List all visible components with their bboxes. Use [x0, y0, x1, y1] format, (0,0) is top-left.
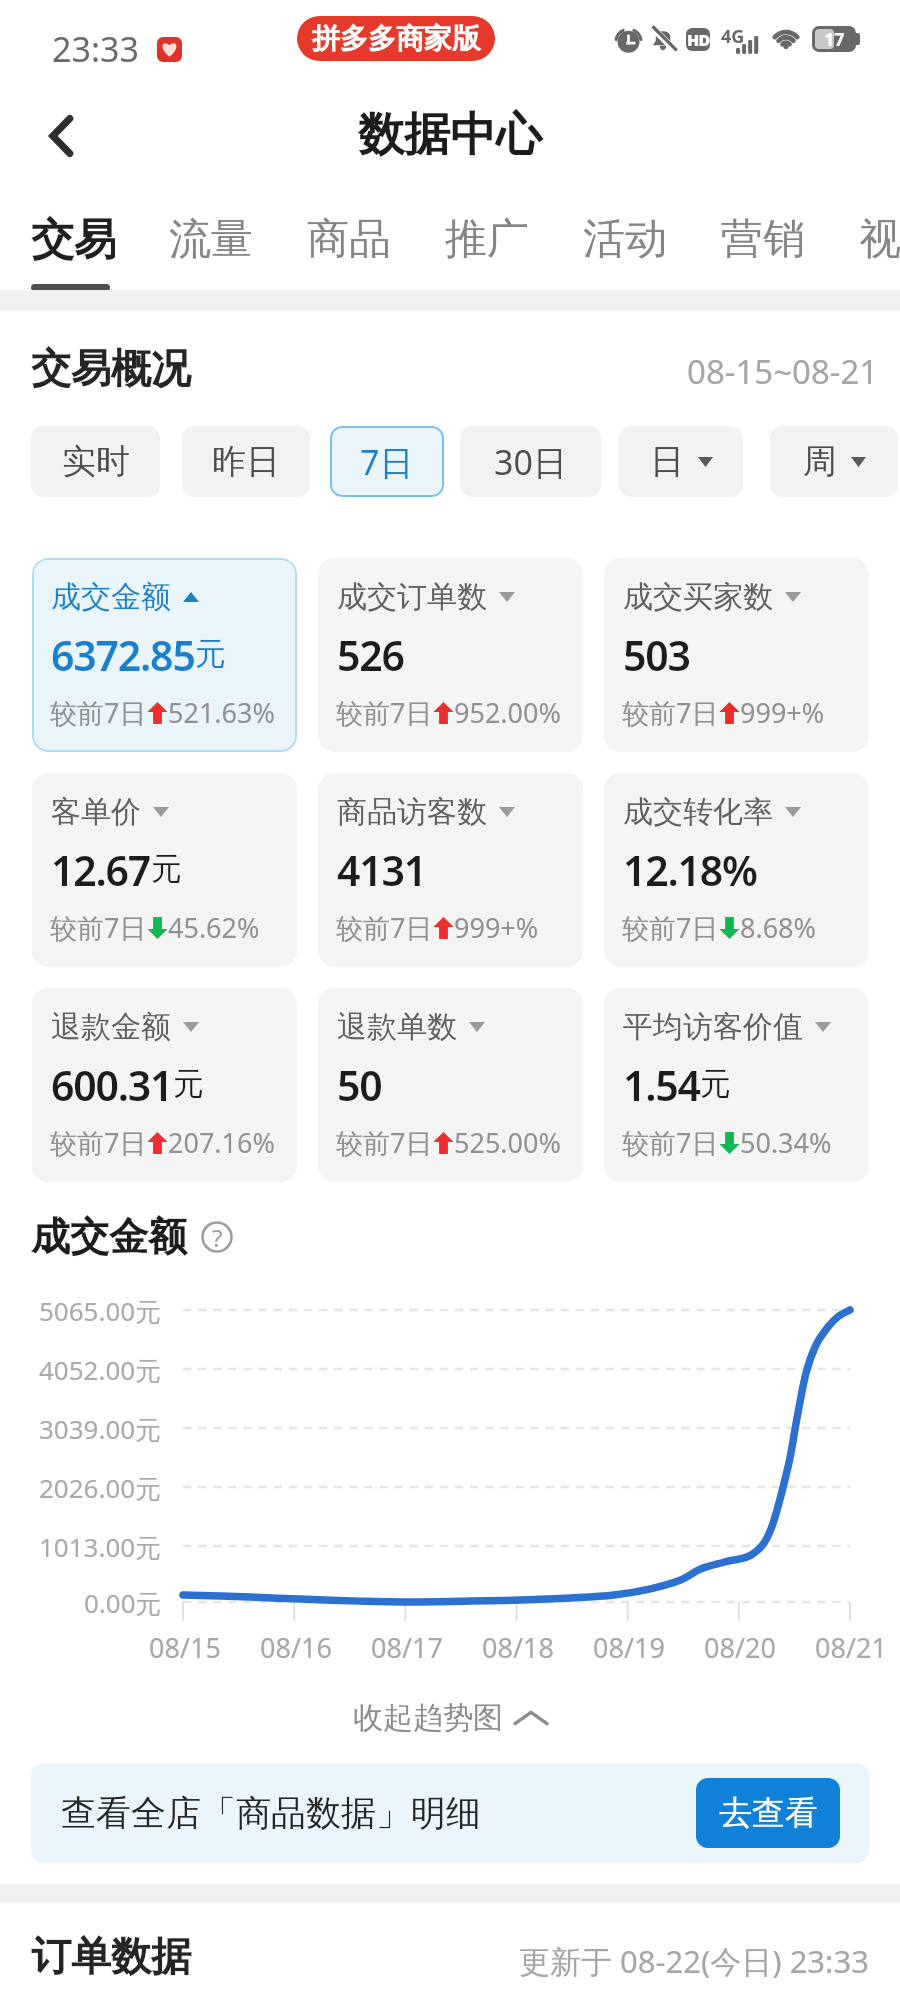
staticText: 数据中心 — [358, 106, 542, 164]
staticText: 元 — [173, 1064, 204, 1103]
button[interactable]: 客单价 — [32, 773, 297, 967]
staticText: 952.00% — [454, 694, 561, 731]
button[interactable]: 退款金额 — [32, 988, 297, 1182]
button[interactable]: 成交订单数 — [318, 558, 583, 752]
staticText: 元 — [195, 634, 226, 673]
staticText: 08-15~08-21 — [687, 349, 879, 394]
staticText: 营销 — [721, 213, 805, 266]
button[interactable]: 成交转化率 — [604, 773, 869, 967]
staticText: 较前7日 — [622, 909, 719, 946]
button[interactable]: 昨日 — [182, 426, 310, 497]
staticText: 较前7日 — [336, 1124, 433, 1161]
staticText: 503 — [623, 627, 690, 683]
staticText: HD — [687, 29, 710, 51]
button[interactable]: 商品访客数 — [318, 773, 583, 967]
staticText: ? — [212, 1221, 223, 1253]
staticText: 08/19 — [593, 1629, 665, 1666]
staticText: 08/15 — [149, 1629, 221, 1666]
staticText: 17 — [824, 27, 845, 52]
staticText: 较前7日 — [622, 694, 719, 731]
staticText: 600.31 — [51, 1057, 173, 1113]
staticText: 08/21 — [815, 1629, 887, 1666]
button[interactable]: 平均访客价值 — [604, 988, 869, 1182]
staticText: 成交金额 — [51, 578, 171, 616]
staticText: 1.54 — [623, 1057, 700, 1113]
staticText: 客单价 — [51, 793, 141, 831]
button[interactable]: Back — [22, 96, 102, 176]
staticText: 5065.00元 — [39, 1293, 162, 1329]
button[interactable]: 视频 — [859, 183, 900, 293]
staticText: 1013.00元 — [39, 1529, 162, 1565]
button[interactable]: 7日 — [330, 426, 444, 497]
staticText: 交易概况 — [31, 343, 191, 393]
staticText: 商品 — [307, 213, 391, 266]
staticText: 退款单数 — [337, 1008, 457, 1046]
staticText: 较前7日 — [622, 1124, 719, 1161]
staticText: 日 — [650, 440, 684, 483]
staticText: 999+% — [454, 909, 539, 946]
staticText: 活动 — [583, 213, 667, 266]
staticText: 成交买家数 — [623, 578, 773, 616]
staticText: 成交金额 — [31, 1212, 187, 1261]
staticText: 较前7日 — [336, 909, 433, 946]
staticText: 08/16 — [260, 1629, 332, 1666]
staticText: 45.62% — [168, 909, 260, 946]
staticText: 4131 — [337, 842, 427, 898]
button[interactable]: 成交买家数 — [604, 558, 869, 752]
staticText: 较前7日 — [50, 1124, 147, 1161]
staticText: 成交转化率 — [623, 793, 773, 831]
staticText: 较前7日 — [50, 694, 147, 731]
button[interactable]: 查看全店「商品数据」明细 — [31, 1763, 869, 1863]
button[interactable]: 收起趋势图 — [353, 1699, 547, 1737]
button[interactable]: 日 — [619, 426, 743, 497]
staticText: 08/17 — [371, 1629, 443, 1666]
button[interactable]: 活动 — [583, 183, 667, 293]
staticText: 元 — [700, 1064, 731, 1103]
staticText: 7日 — [360, 439, 414, 485]
staticText: 12.67 — [51, 842, 151, 898]
staticText: 3039.00元 — [39, 1411, 162, 1447]
button[interactable]: 商品 — [307, 183, 391, 293]
button[interactable]: 退款单数 — [318, 988, 583, 1182]
staticText: 08/18 — [482, 1629, 554, 1666]
button[interactable]: 30日 — [460, 426, 601, 497]
button[interactable]: 成交金额 — [32, 558, 297, 752]
staticText: 去查看 — [719, 1792, 818, 1834]
button[interactable]: 去查看 — [696, 1778, 840, 1848]
staticText: 成交订单数 — [337, 578, 487, 616]
button[interactable]: 营销 — [721, 183, 805, 293]
staticText: 526 — [337, 627, 404, 683]
staticText: 拼多多商家版 — [312, 21, 480, 56]
staticText: 订单数据 — [31, 1931, 191, 1981]
button[interactable]: 推广 — [445, 183, 529, 293]
staticText: 50 — [337, 1057, 382, 1113]
button[interactable]: 实时 — [31, 426, 160, 497]
staticText: 6372.85 — [51, 627, 195, 683]
staticText: 12.18% — [623, 842, 757, 898]
staticText: 525.00% — [454, 1124, 561, 1161]
staticText: 50.34% — [740, 1124, 832, 1161]
staticText: 更新于 08-22(今日) 23:33 — [519, 1940, 869, 1982]
staticText: 0.00元 — [84, 1585, 162, 1621]
staticText: 元 — [151, 849, 182, 888]
staticText: 30日 — [494, 439, 567, 485]
staticText: 推广 — [445, 213, 529, 266]
button[interactable]: 流量 — [169, 183, 253, 293]
staticText: 退款金额 — [51, 1008, 171, 1046]
staticText: 收起趋势图 — [353, 1699, 503, 1737]
staticText: 8.68% — [740, 909, 817, 946]
staticText: 4G — [721, 24, 745, 49]
staticText: 207.16% — [168, 1124, 275, 1161]
staticText: 08/20 — [704, 1629, 776, 1666]
button[interactable]: 周 — [770, 426, 898, 497]
staticText: 4052.00元 — [39, 1352, 162, 1388]
staticText: 521.63% — [168, 694, 275, 731]
staticText: 视频 — [859, 213, 900, 266]
staticText: 23:33 — [52, 26, 139, 72]
staticText: 实时 — [62, 440, 130, 483]
button[interactable]: 交易 — [31, 183, 115, 293]
staticText: 流量 — [169, 213, 253, 266]
staticText: 2026.00元 — [39, 1470, 162, 1506]
staticText: 昨日 — [212, 440, 280, 483]
staticText: 商品访客数 — [337, 793, 487, 831]
